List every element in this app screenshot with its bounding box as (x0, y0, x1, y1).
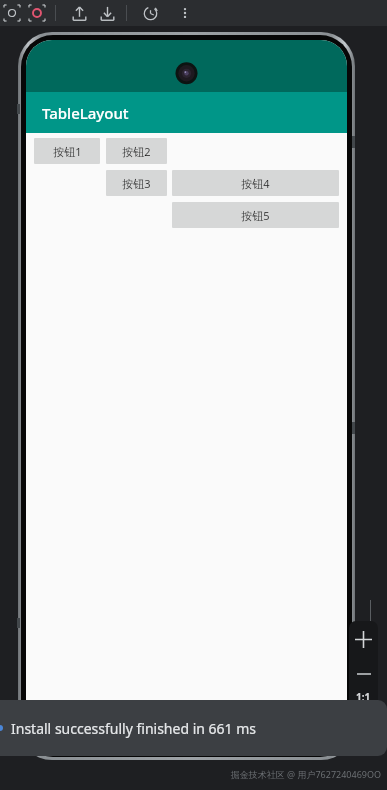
button[interactable]: 按钮2 (106, 138, 167, 164)
staticText: 1:1 (356, 690, 371, 704)
button[interactable]: Actual size (349, 690, 378, 720)
button[interactable]: 按钮5 (172, 202, 339, 228)
button[interactable]: Zoom out (349, 658, 378, 690)
button[interactable]: Record screen (27, 3, 47, 23)
button[interactable]: History (140, 3, 160, 23)
staticText: 按钮1 (53, 144, 82, 159)
button[interactable]: Upload to device (69, 3, 89, 23)
button[interactable]: Zoom in (349, 621, 378, 658)
staticText: Install successfully finished in 661 ms (11, 719, 257, 738)
staticText: 按钮5 (241, 208, 270, 223)
button[interactable]: Download from device (97, 3, 117, 23)
button[interactable]: Take screenshot (2, 3, 22, 23)
staticText: 按钮3 (122, 176, 151, 191)
button[interactable]: 按钮1 (34, 138, 100, 164)
button[interactable]: Install successfully finished in 661 ms (0, 700, 387, 756)
button[interactable]: TableLayout (26, 92, 347, 133)
button[interactable]: 按钮3 (106, 170, 167, 196)
staticText: 掘金技术社区 @ 用户7627240469OO (230, 768, 381, 780)
staticText: 按钮2 (122, 144, 151, 159)
button[interactable]: 按钮4 (172, 170, 339, 196)
staticText: 按钮4 (241, 176, 270, 191)
button[interactable]: More options (175, 3, 195, 23)
staticText: TableLayout (42, 103, 129, 123)
